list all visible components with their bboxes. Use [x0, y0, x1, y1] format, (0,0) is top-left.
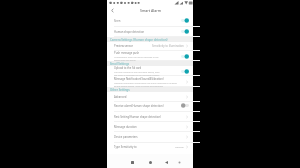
staticText: Advanced [114, 95, 127, 99]
button[interactable]: Recents [128, 158, 137, 167]
button[interactable]: Siren [107, 16, 193, 25]
staticText: Siren [114, 19, 121, 23]
staticText: Type Sensitivity to [114, 145, 137, 149]
button[interactable]: Type Sensitivity to [107, 142, 193, 151]
staticText: Email Settings [110, 62, 130, 66]
button[interactable]: Back [162, 158, 171, 167]
button[interactable]: Message Notification(Sound&Vibration) [107, 76, 193, 88]
button[interactable]: Advanced [107, 92, 193, 101]
staticText: Sensitivity to illumination [152, 44, 184, 48]
button[interactable]: Push message push [107, 51, 193, 62]
button[interactable]: Human shape detection [107, 27, 193, 36]
staticText: Camera Settings (Human shape detection) [110, 38, 168, 42]
staticText: General [175, 145, 184, 148]
staticText: Message notification mode when the alarm… [114, 82, 178, 88]
button[interactable]: Back [108, 6, 117, 15]
button[interactable]: Home [146, 158, 155, 167]
button[interactable]: Device parameters [107, 132, 193, 141]
button[interactable]: Message duration [107, 122, 193, 131]
button[interactable]: Preview sensor [107, 41, 193, 50]
staticText: Smart Alarm [140, 8, 162, 13]
staticText: Push message push [114, 51, 140, 55]
staticText: Message duration [114, 125, 137, 129]
staticText: Rest Setting(Human shape detection) [114, 115, 161, 119]
staticText: Message Notification(Sound&Vibration) [114, 77, 164, 81]
staticText: Preview sensor [114, 44, 133, 48]
staticText: Other Settings [110, 88, 130, 92]
staticText: The local storage of the recording devic… [114, 71, 161, 77]
button[interactable]: Rest Setting(Human shape detection) [107, 112, 193, 121]
button[interactable]: Upload to the Sd card [107, 65, 193, 77]
button[interactable]: More [175, 158, 184, 167]
staticText: Receive alarm(Human shape detection) [114, 104, 164, 108]
button[interactable]: Receive alarm(Human shape detection) [107, 101, 193, 110]
staticText: Upload to the Sd card [114, 66, 142, 70]
staticText: Human shape detection [114, 30, 145, 34]
staticText: Automatically push the alarm message to … [114, 56, 161, 62]
staticText: Device parameters [114, 135, 138, 139]
